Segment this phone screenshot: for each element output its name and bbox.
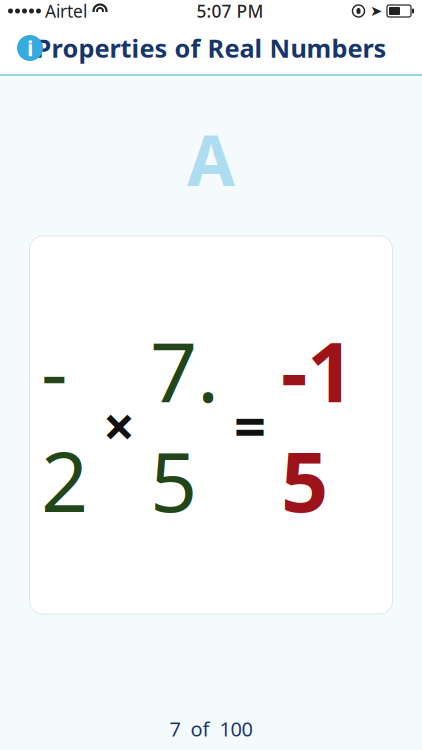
staticText: -15 — [281, 315, 354, 535]
staticText: ➤ — [370, 3, 382, 19]
staticText: -2 — [41, 315, 88, 535]
staticText: = — [219, 388, 281, 462]
staticText: 7.5 — [150, 315, 219, 535]
staticText: × — [88, 388, 150, 462]
staticText: i — [27, 34, 33, 62]
staticText: 7 of 100 — [169, 715, 252, 742]
staticText: A — [187, 113, 235, 205]
staticText: 5:07 PM — [196, 0, 263, 22]
staticText: Properties of Real Numbers — [35, 31, 386, 65]
staticText: Airtel — [45, 0, 87, 22]
button[interactable]: Information — [8, 26, 52, 70]
